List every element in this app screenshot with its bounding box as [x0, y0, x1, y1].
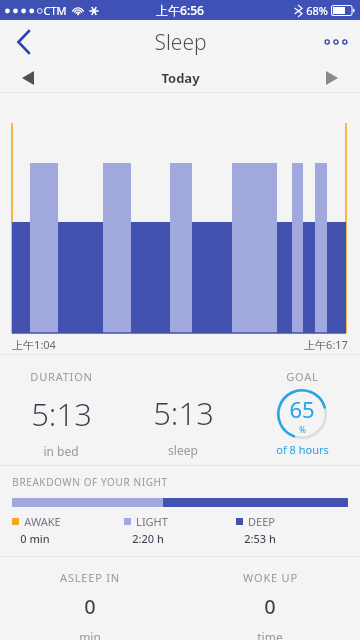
staticText: % — [299, 424, 306, 435]
staticText: in bed — [43, 443, 79, 459]
staticText: 上午1:04 — [12, 337, 56, 352]
staticText: 65 — [289, 394, 315, 424]
staticText: AWAKE — [24, 514, 61, 529]
staticText: 5:13 — [153, 392, 214, 434]
staticText: Today — [161, 69, 200, 87]
button[interactable]: WOKE UP — [180, 557, 360, 640]
button[interactable]: 5:13 — [122, 355, 244, 465]
staticText: GOAL — [286, 369, 319, 384]
button[interactable]: ASLEEP IN — [0, 557, 180, 640]
staticText: 0 — [264, 593, 276, 620]
staticText: LIGHT — [136, 514, 168, 529]
button[interactable]: GOAL — [244, 355, 360, 465]
staticText: 上午6:56 — [156, 2, 204, 18]
staticText: WOKE UP — [243, 570, 298, 585]
staticText: Sleep — [154, 28, 207, 57]
staticText: min — [79, 629, 101, 640]
staticText: 5:13 — [31, 393, 92, 435]
staticText: time — [257, 629, 283, 640]
staticText: BREAKDOWN OF YOUR NIGHT — [12, 475, 168, 489]
staticText: DEEP — [248, 514, 275, 529]
staticText: 2:20 h — [132, 531, 164, 546]
staticText: 68% — [306, 3, 328, 18]
button[interactable]: DURATION — [0, 355, 122, 465]
button[interactable]: Next day — [312, 64, 352, 92]
staticText: ASLEEP IN — [60, 570, 120, 585]
staticText: of 8 hours — [276, 442, 329, 457]
staticText: DURATION — [30, 369, 93, 384]
staticText: sleep — [168, 442, 198, 458]
button[interactable]: More options — [312, 20, 360, 64]
staticText: 0 — [84, 593, 96, 620]
button[interactable]: Previous day — [8, 64, 48, 92]
staticText: 上午6:17 — [304, 337, 348, 352]
staticText: 0 min — [20, 531, 50, 546]
staticText: 2:53 h — [244, 531, 276, 546]
button[interactable]: BREAKDOWN OF YOUR NIGHT — [0, 466, 360, 556]
staticText: CTM — [43, 3, 67, 18]
button[interactable]: Back — [0, 20, 48, 64]
